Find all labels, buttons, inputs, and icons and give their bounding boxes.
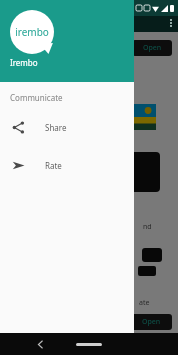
button[interactable]: Open (132, 40, 172, 56)
staticText: Share (45, 122, 67, 133)
button[interactable]: Rate (0, 151, 134, 179)
staticText: nd (143, 222, 152, 232)
button[interactable]: Share (0, 113, 134, 141)
staticText: irembo (15, 25, 49, 39)
button[interactable]: Open (130, 314, 172, 330)
button[interactable]: More options (166, 18, 176, 28)
staticText: ate (139, 298, 150, 308)
button[interactable]: Home (76, 343, 102, 346)
staticText: Open (143, 43, 162, 53)
staticText: Rate (45, 160, 62, 171)
staticText: Communicate (10, 92, 63, 103)
staticText: Irembo (10, 57, 38, 68)
button[interactable]: Back (30, 333, 50, 355)
staticText: Open (142, 317, 161, 327)
